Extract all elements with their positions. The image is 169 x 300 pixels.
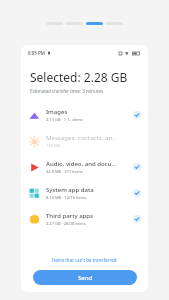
staticText: 2.27 GB · 28/28 items [46, 221, 86, 226]
staticText: 2.13 GB · 1,1...items [46, 117, 83, 122]
button[interactable]: Selected Images [133, 111, 141, 119]
staticText: Send [78, 274, 93, 282]
staticText: Messages, contacts, an... [46, 134, 118, 142]
button[interactable]: Messages, contacts, an... [21, 128, 148, 154]
staticText: 6:05 PM [28, 50, 45, 56]
staticText: 34.8 MB · 311 items [46, 169, 83, 174]
button[interactable]: Selected Audio, video, and docu... [133, 163, 141, 171]
staticText: Audio, video, and docu... [46, 160, 117, 168]
button[interactable]: Audio, video, and docu... [21, 154, 148, 180]
button[interactable]: Selected System app data [133, 189, 141, 197]
staticText: Third party apps [46, 212, 93, 220]
button[interactable]: Send [33, 270, 137, 285]
staticText: 140 MB [46, 143, 61, 148]
button[interactable]: Third party apps [21, 206, 148, 232]
button[interactable]: Selected Third party apps [133, 215, 141, 223]
staticText: Estimated transfer time: 3 minutes [30, 88, 104, 94]
button[interactable]: System app data [21, 180, 148, 206]
staticText: Selected: 2.28 GB [30, 69, 128, 85]
staticText: Images [46, 108, 68, 116]
staticText: 8.12 MB · 12/16 items [46, 195, 87, 200]
button[interactable]: Images [21, 102, 148, 128]
button[interactable]: Items that can't be transferred [50, 256, 119, 264]
staticText: System app data [46, 186, 94, 194]
